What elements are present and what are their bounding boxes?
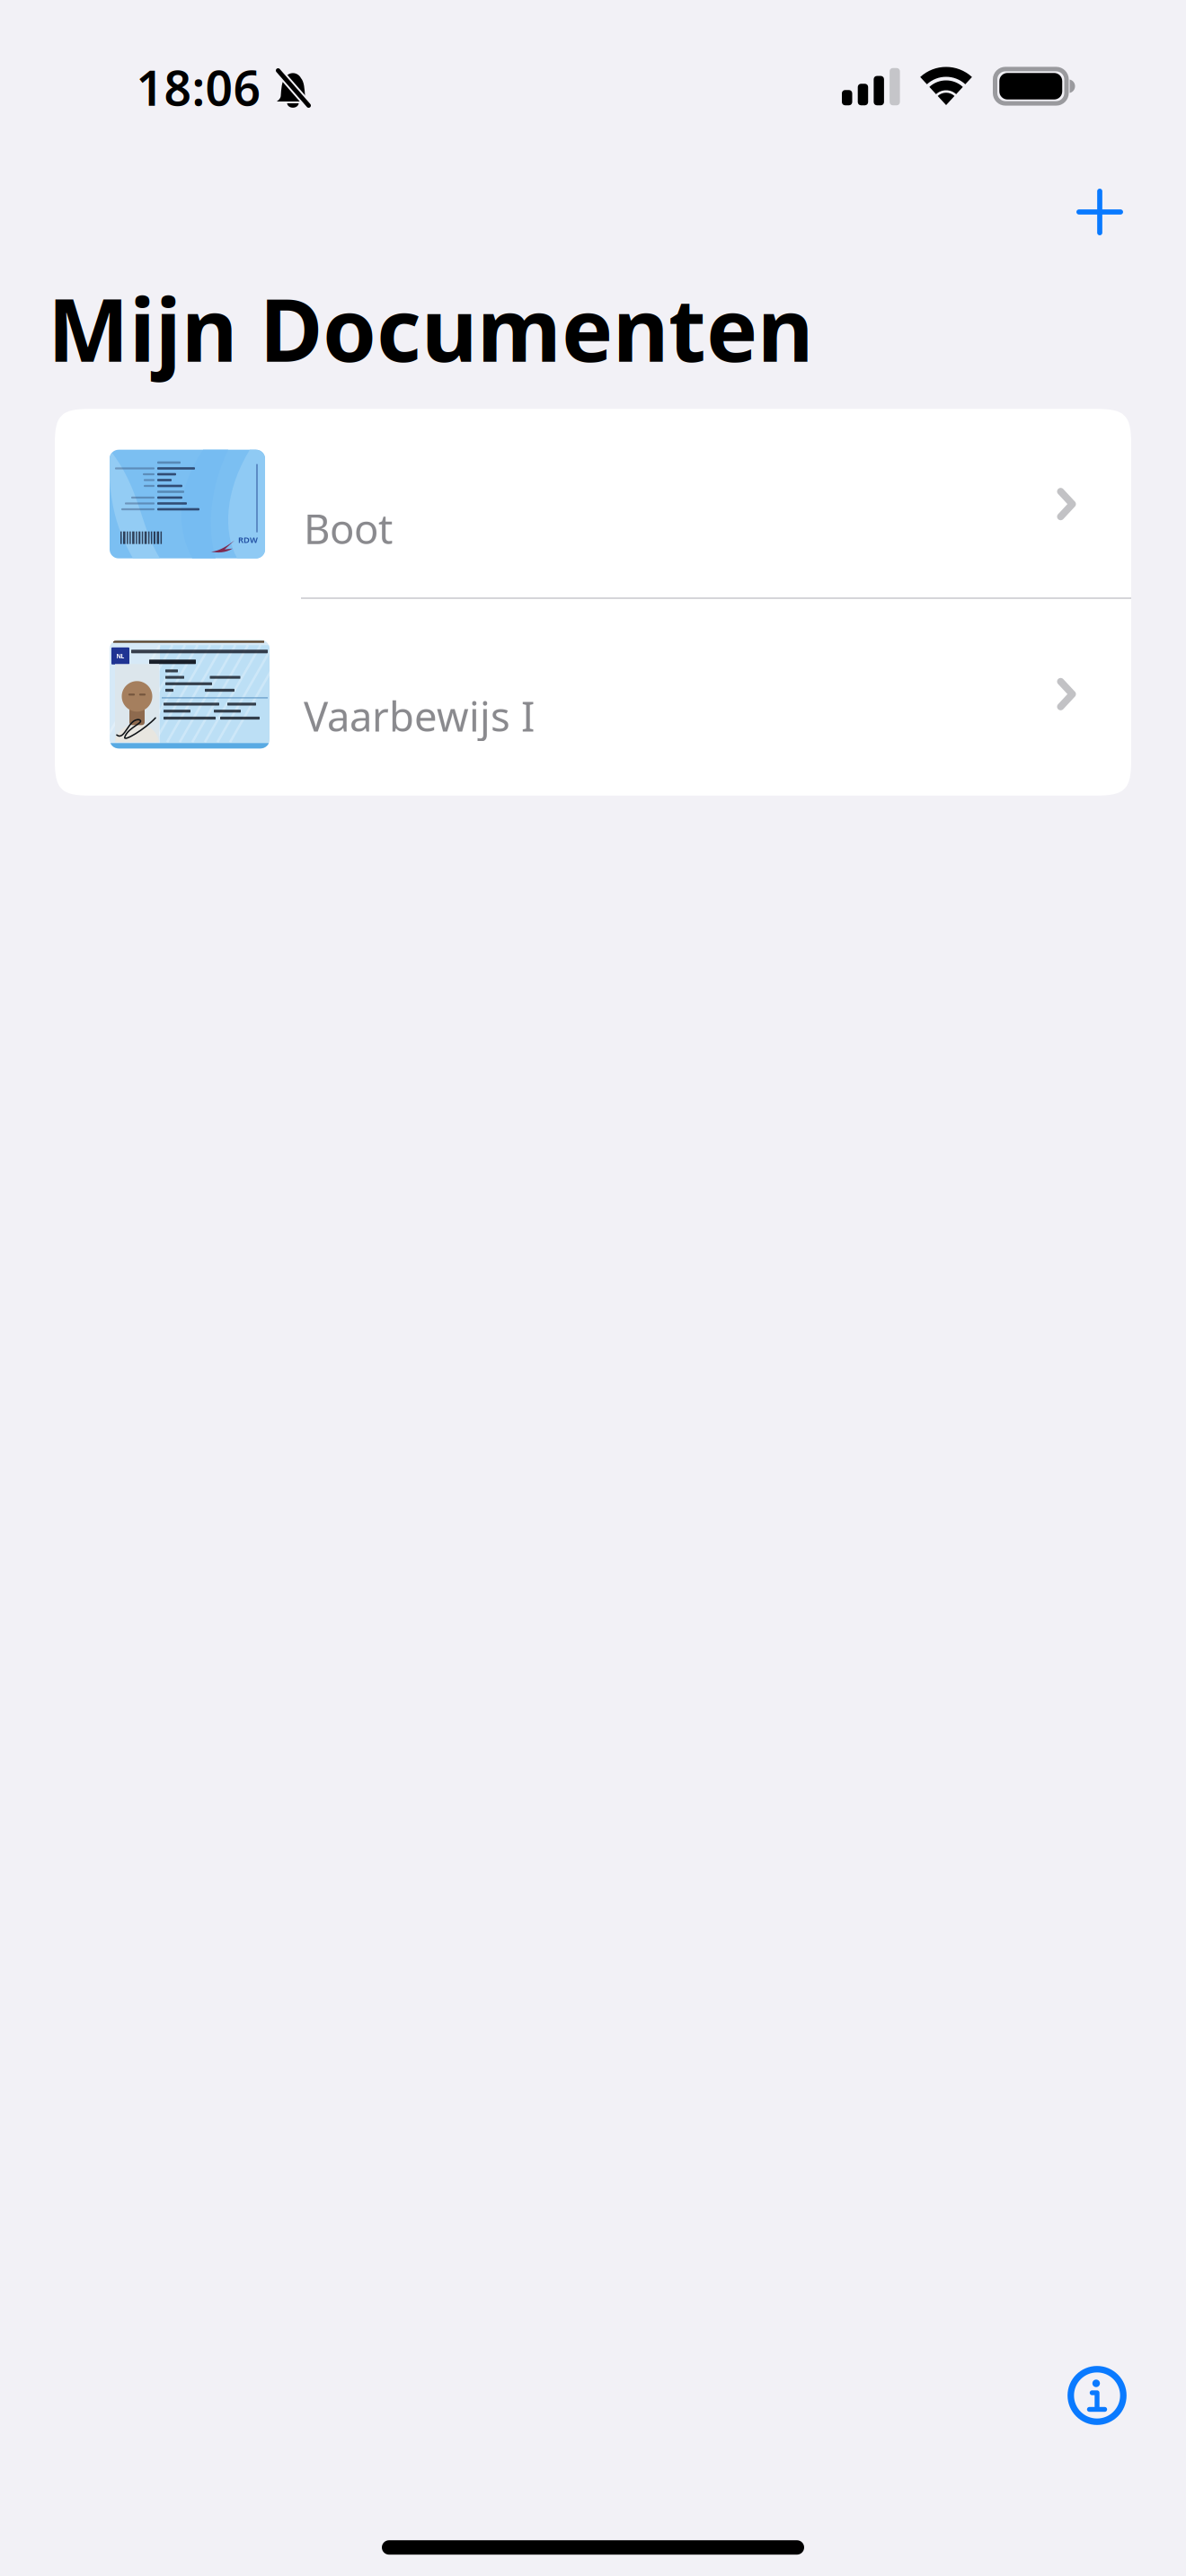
button[interactable]: Add document	[1050, 163, 1149, 261]
staticText: Mijn Documenten	[48, 271, 813, 386]
staticText: Vaarbewijs I	[304, 689, 535, 743]
staticText: RDW	[238, 534, 258, 545]
staticText: Boot	[304, 501, 393, 555]
button[interactable]: RDW	[55, 409, 1131, 597]
button[interactable]: Information	[1048, 2346, 1146, 2445]
button[interactable]: NL	[55, 599, 1131, 796]
staticText: NL	[116, 652, 124, 660]
staticText: 18:06	[136, 55, 261, 119]
